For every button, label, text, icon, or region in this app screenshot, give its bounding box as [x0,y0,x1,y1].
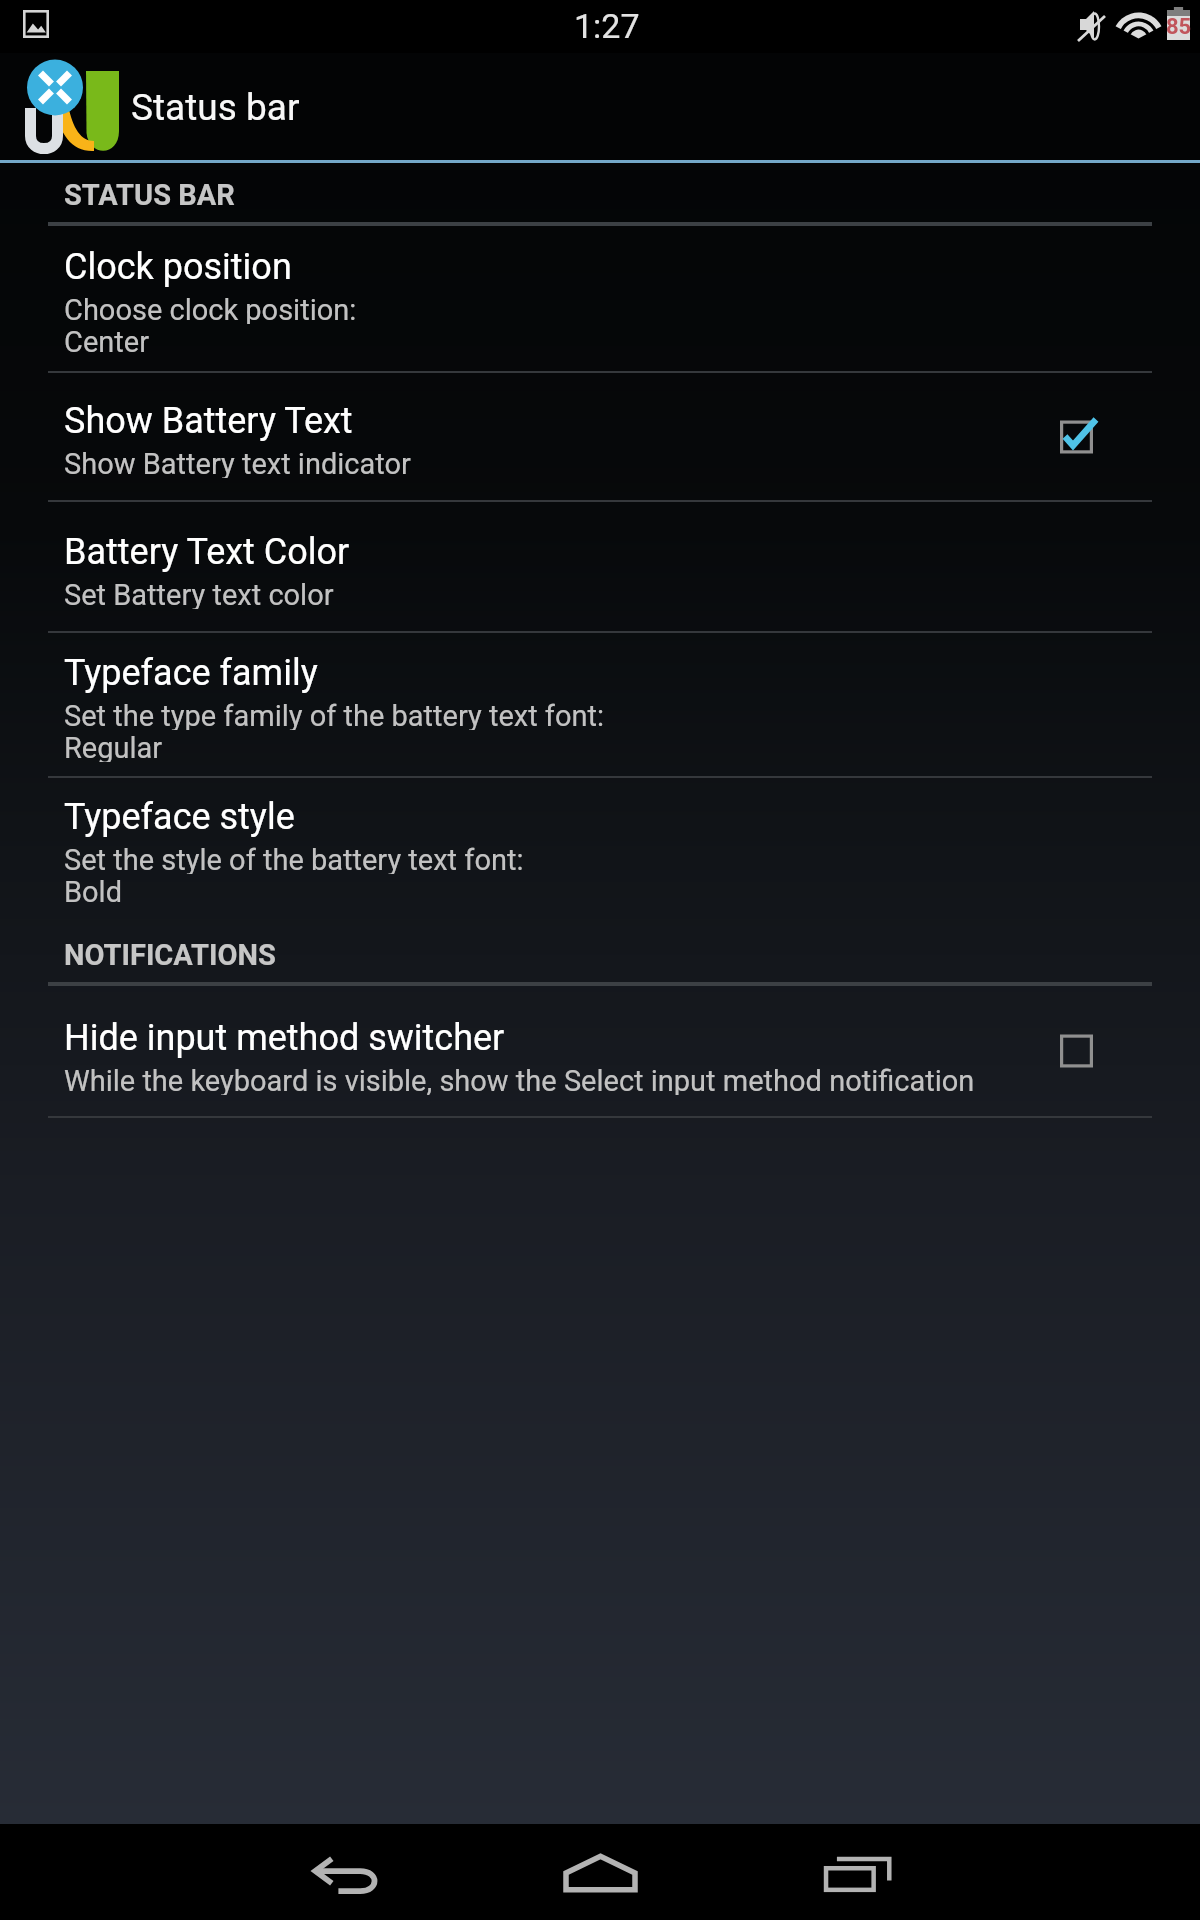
staticText: Choose clock position: [64,293,357,324]
button[interactable]: Back [216,1824,473,1920]
button[interactable]: Typeface style [0,778,1200,923]
staticText: STATUS BAR [64,178,235,212]
staticText: Status bar [131,86,300,129]
staticText: Show Battery Text [64,400,353,442]
staticText: NOTIFICATIONS [64,938,276,972]
button[interactable]: Typeface family [0,633,1200,776]
staticText: Clock position [64,246,292,288]
staticText: 1:27 [574,6,640,46]
button[interactable]: Toggle [1060,1005,1152,1097]
button[interactable]: Clock position [0,226,1200,371]
staticText: Typeface style [64,796,295,838]
staticText: Set Battery text color [64,578,334,609]
button[interactable]: Recent apps [728,1824,987,1920]
button[interactable]: Toggle [1060,391,1152,483]
staticText: Show Battery text indicator [64,447,411,478]
staticText: While the keyboard is visible, show the … [64,1064,975,1095]
button[interactable]: Battery Text Color [0,502,1200,631]
staticText: Bold [64,875,123,906]
button[interactable]: Home [473,1824,728,1920]
staticText: Regular [64,731,163,762]
staticText: Typeface family [64,652,318,694]
button[interactable]: Status bar [0,53,1200,160]
staticText: Set the type family of the battery text … [64,699,605,730]
button[interactable]: Show Battery Text [0,373,1200,500]
button[interactable]: Hide input method switcher [0,986,1200,1116]
staticText: Battery Text Color [64,531,350,573]
staticText: Center [64,325,149,356]
staticText: Hide input method switcher [64,1017,505,1059]
staticText: 85 [1166,14,1192,40]
staticText: Set the style of the battery text font: [64,843,524,874]
